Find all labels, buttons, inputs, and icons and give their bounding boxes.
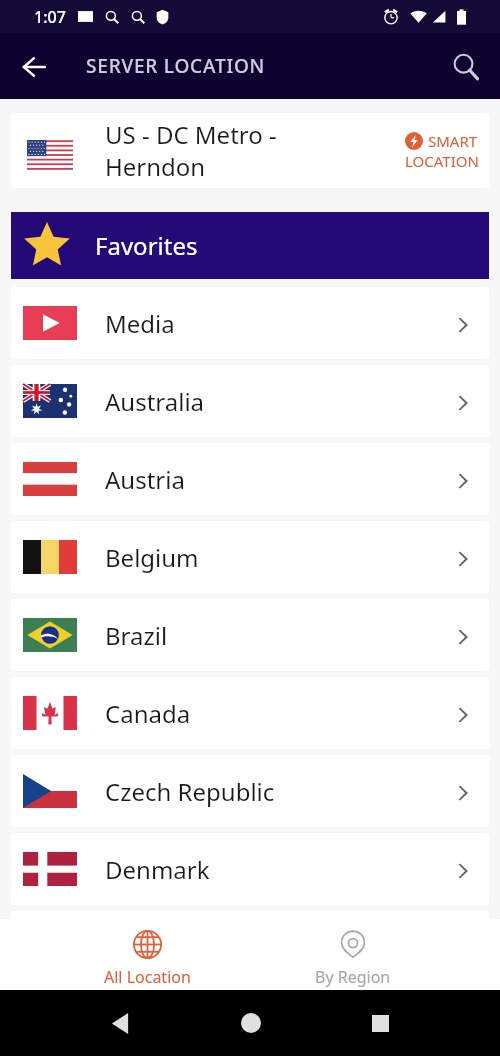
staticText: Brazil: [105, 619, 452, 652]
button[interactable]: Austria: [11, 443, 489, 515]
button[interactable]: Australia: [11, 365, 489, 437]
staticText: LOCATION: [405, 151, 479, 171]
button[interactable]: All Location: [45, 919, 250, 990]
button[interactable]: Czech Republic: [11, 755, 489, 827]
button[interactable]: Belgium: [11, 521, 489, 593]
staticText: SMART: [428, 131, 478, 151]
staticText: SERVER LOCATION: [86, 53, 266, 79]
button[interactable]: Back: [0, 33, 68, 99]
button[interactable]: Search: [436, 33, 500, 99]
staticText: Belgium: [105, 541, 452, 574]
staticText: Media: [105, 307, 452, 340]
staticText: Australia: [105, 385, 452, 418]
button[interactable]: Canada: [11, 677, 489, 749]
staticText: All Location: [104, 966, 191, 988]
staticText: 1:07: [34, 6, 66, 28]
staticText: US - DC Metro - Herndon: [105, 118, 285, 183]
staticText: Austria: [105, 463, 452, 496]
button[interactable]: Denmark: [11, 833, 489, 905]
button[interactable]: Favorites: [11, 212, 489, 279]
button[interactable]: By Region: [250, 919, 455, 990]
staticText: Favorites: [95, 229, 198, 262]
button[interactable]: US - DC Metro - Herndon: [11, 113, 489, 188]
staticText: By Region: [315, 966, 391, 988]
button[interactable]: Brazil: [11, 599, 489, 671]
staticText: Czech Republic: [105, 775, 452, 808]
staticText: Denmark: [105, 853, 452, 886]
staticText: Canada: [105, 697, 452, 730]
button[interactable]: Media: [11, 287, 489, 359]
